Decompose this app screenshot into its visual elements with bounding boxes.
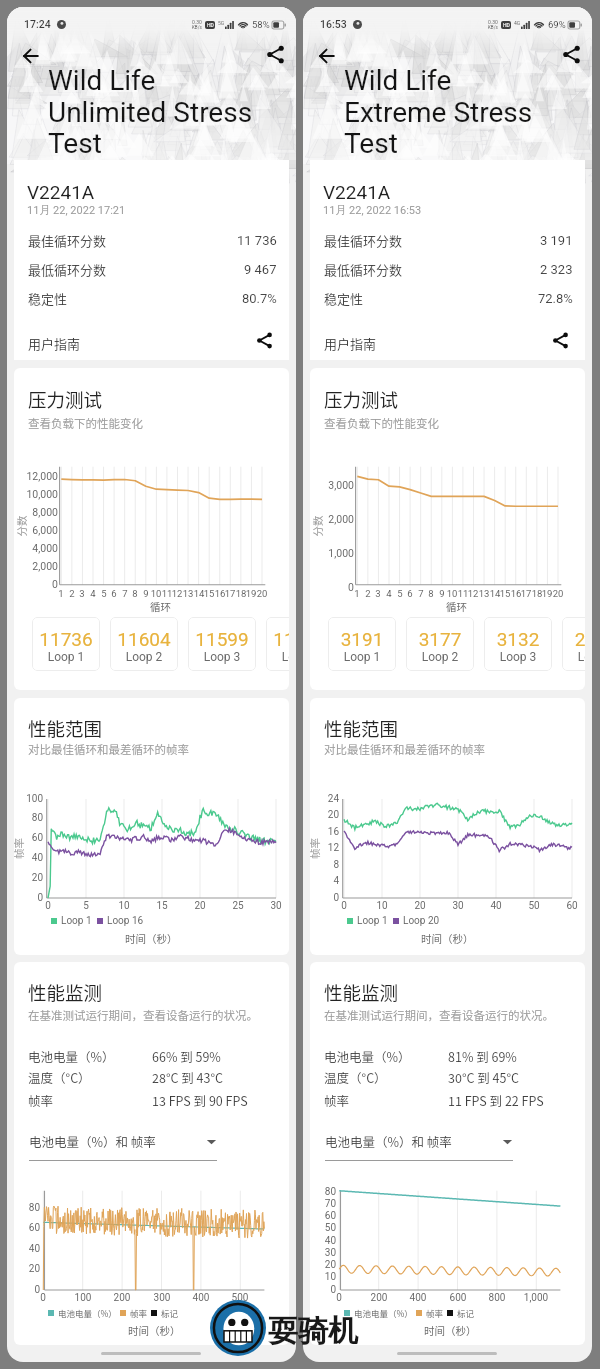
staticText: 60 [560,900,584,912]
button[interactable] [14,323,289,357]
staticText: 温度（°C） [28,1068,91,1086]
staticText: 帧率 [310,838,321,859]
staticText: V2241A [27,181,95,203]
staticText: 20 [314,809,339,821]
staticText: 200 [108,1292,136,1304]
staticText: 0 [19,578,58,590]
staticText: 2 323 [540,262,573,277]
button[interactable]: 11599 [188,617,256,671]
staticText: 13 FPS 到 90 FPS [152,1091,248,1109]
staticText: Unlimited Stress [48,96,253,129]
staticText: 3,000 [315,479,354,491]
staticText: 20 [254,588,270,599]
staticText: 对比最佳循环和最差循环的帧率 [28,741,189,758]
staticText: 40 [14,1243,40,1255]
staticText: 13 [180,588,196,599]
staticText: 分数 [14,515,27,536]
staticText: 50 [522,900,546,912]
staticText: 1 [349,588,365,599]
staticText: 3177 [406,628,474,650]
staticText: 11 736 [237,233,277,248]
staticText: 600 [444,1292,472,1304]
staticText: 12 [169,588,185,599]
button[interactable]: 电池电量（%）和 帧率 [325,1129,513,1153]
staticText: 在基准测试运行期间，查看设备运行的状况。 [28,1007,258,1024]
staticText: 0 [36,900,60,912]
staticText: 用户指南 [28,334,81,353]
staticText: 100 [69,1292,97,1304]
staticText: 循环 [446,599,467,614]
button[interactable]: Back [20,45,42,67]
button[interactable]: 3191 [328,617,396,671]
staticText: 20 [18,872,43,884]
staticText: 在基准测试运行期间，查看设备运行的状况。 [324,1007,554,1024]
button[interactable]: 11604 [110,617,178,671]
staticText: 11月 22, 2022 17:21 [27,203,126,217]
button[interactable]: 11736 [32,617,100,671]
staticText: 3 [370,588,386,599]
button[interactable]: 电池电量（%）和 帧率 [29,1129,217,1153]
button[interactable]: 11555 [266,617,289,671]
staticText: 3132 [484,628,552,650]
button[interactable]: 2899 [562,617,585,671]
staticText: 2 [64,588,80,599]
staticText: 2,000 [315,513,354,525]
staticText: 性能范围 [324,715,399,742]
button[interactable]: Back [316,45,338,67]
staticText: 12,000 [19,470,58,482]
staticText: 4G [514,20,521,26]
staticText: 40 [18,852,43,864]
staticText: 2899 [562,628,585,650]
staticText: V2241A [323,181,391,203]
staticText: 9 [138,588,154,599]
staticText: 标记 [161,1307,179,1318]
staticText: Test [344,127,398,160]
staticText: 8 [127,588,143,599]
staticText: 9 [434,588,450,599]
staticText: 80 [310,1186,336,1198]
staticText: Loop 1 [32,650,100,664]
staticText: 17 [518,588,534,599]
staticText: 16:53 [320,18,347,30]
staticText: 稳定性 [28,289,68,307]
staticText: 4,000 [19,542,58,554]
staticText: 时间（秒） [128,1323,181,1338]
staticText: 帧率 [324,1091,350,1109]
staticText: 11 FPS 到 22 FPS [448,1091,544,1109]
button[interactable] [310,323,585,357]
staticText: 1,000 [522,1292,550,1304]
staticText: 8,000 [19,506,58,518]
staticText: 帧率 [28,1091,54,1109]
staticText: 7 [117,588,133,599]
staticText: 30 [310,1247,336,1259]
button[interactable]: 3177 [406,617,474,671]
staticText: 10 [444,588,460,599]
staticText: 11 [159,588,175,599]
staticText: Wild Life [344,64,452,97]
staticText: 80 [18,812,43,824]
staticText: 0 [315,581,354,593]
staticText: 最低循环分数 [28,260,107,278]
staticText: 18 [233,588,249,599]
staticText: 0 [310,1284,336,1296]
staticText: 3191 [328,628,396,650]
staticText: 用户指南 [324,334,377,353]
staticText: 80.7% [242,291,277,306]
button[interactable]: 3132 [484,617,552,671]
staticText: 性能监测 [28,979,103,1006]
staticText: 温度（°C） [324,1068,387,1086]
staticText: 81% 到 69% [448,1047,517,1065]
staticText: 压力测试 [28,386,103,413]
staticText: 4 [314,875,339,887]
staticText: 0 [325,1292,353,1304]
button[interactable]: Share [266,45,285,64]
staticText: 72.8% [538,291,573,306]
button[interactable]: Share [562,45,581,64]
staticText: 分数 [310,515,323,536]
staticText: 压力测试 [324,386,399,413]
staticText: 查看负载下的性能变化 [28,415,143,432]
staticText: 1 [53,588,69,599]
staticText: 4 [85,588,101,599]
staticText: KB/s [488,25,498,30]
staticText: 10 [310,1271,336,1283]
